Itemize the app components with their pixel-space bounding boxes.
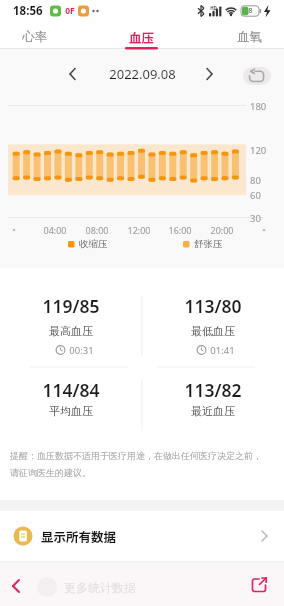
staticText: 16:00 xyxy=(168,224,192,236)
staticText: 114/84 xyxy=(42,378,100,402)
button[interactable] xyxy=(0,511,284,556)
staticText: 血氧 xyxy=(237,29,262,45)
staticText: 舒张压 xyxy=(194,238,223,250)
staticText: 04:00 xyxy=(43,224,67,236)
staticText: 00:31 xyxy=(69,344,94,357)
staticText: 180 xyxy=(250,100,267,113)
staticText: 30 xyxy=(250,212,261,225)
staticText: 80 xyxy=(250,174,261,187)
staticText: 收缩压 xyxy=(79,238,108,250)
staticText: 18:56 xyxy=(13,3,43,19)
button[interactable] xyxy=(62,63,84,85)
staticText: 最近血压 xyxy=(191,404,235,418)
staticText: 最高血压 xyxy=(49,324,93,338)
staticText: 血压 xyxy=(129,28,155,46)
staticText: 8 xyxy=(248,6,253,16)
button[interactable]: 血压 xyxy=(117,24,167,49)
staticText: 2022.09.08 xyxy=(109,65,176,83)
staticText: 120 xyxy=(250,144,267,157)
button[interactable] xyxy=(4,572,32,600)
staticText: HD xyxy=(210,5,217,11)
staticText: 心率 xyxy=(22,29,47,45)
staticText: 60 xyxy=(250,189,261,202)
staticText: 显示所有数据 xyxy=(41,527,117,545)
staticText: 请征询医生的建议。 xyxy=(10,467,91,478)
button[interactable]: 血氧 xyxy=(224,24,274,49)
staticText: 08:00 xyxy=(85,224,109,236)
staticText: 01:41 xyxy=(210,344,235,357)
button[interactable] xyxy=(243,67,271,85)
staticText: 113/82 xyxy=(184,378,242,402)
staticText: 0F xyxy=(65,5,75,17)
staticText: 平均血压 xyxy=(49,404,93,418)
button[interactable]: 心率 xyxy=(9,24,59,49)
staticText: 更多统计数据 xyxy=(64,580,136,595)
staticText: 119/85 xyxy=(42,294,100,318)
staticText: 20:00 xyxy=(210,224,234,236)
staticText: 12:00 xyxy=(127,224,151,236)
staticText: 提醒：血压数据不适用于医疗用途，在做出任何医疗决定之前， xyxy=(10,450,262,461)
button[interactable] xyxy=(200,63,222,85)
staticText: 最低血压 xyxy=(191,324,235,338)
button[interactable] xyxy=(246,572,274,600)
staticText: 113/80 xyxy=(184,294,242,318)
